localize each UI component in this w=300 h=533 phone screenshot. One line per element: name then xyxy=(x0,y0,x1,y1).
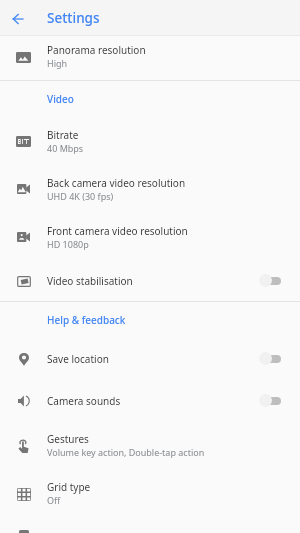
staticText: Camera sounds xyxy=(47,394,121,408)
button[interactable]: Camera sounds xyxy=(247,382,300,424)
button[interactable]: Camera sounds xyxy=(0,382,300,424)
staticText: Help & feedback xyxy=(47,313,126,327)
staticText: Grid type xyxy=(47,480,91,494)
staticText: Settings xyxy=(47,9,100,27)
button[interactable]: Save location xyxy=(247,340,300,382)
staticText: Front camera video resolution xyxy=(47,224,188,238)
staticText: 40 Mbps xyxy=(47,142,84,154)
staticText: Bitrate xyxy=(47,128,79,142)
button[interactable]: Video stabilisation xyxy=(0,261,300,301)
staticText: Panorama resolution xyxy=(47,43,146,57)
staticText: Save location xyxy=(47,352,109,366)
staticText: HD 1080p xyxy=(47,238,89,250)
staticText: Video xyxy=(47,92,74,106)
staticText: Gestures xyxy=(47,432,89,446)
staticText: High xyxy=(47,57,68,69)
staticText: Volume key action, Double-tap action xyxy=(47,446,205,458)
button[interactable] xyxy=(0,520,300,533)
button[interactable]: Back xyxy=(0,1,36,36)
button[interactable]: Back camera video resolution xyxy=(0,165,300,213)
staticText: Off xyxy=(47,494,61,506)
button[interactable]: Bitrate xyxy=(0,117,300,165)
button[interactable]: Gestures xyxy=(0,424,300,472)
staticText: UHD 4K (30 fps) xyxy=(47,190,114,202)
button[interactable]: Grid type xyxy=(0,472,300,520)
staticText: Video stabilisation xyxy=(47,274,133,288)
button[interactable]: Front camera video resolution xyxy=(0,213,300,261)
button[interactable]: Panorama resolution xyxy=(0,36,300,80)
button[interactable]: Save location xyxy=(0,340,300,382)
staticText: Back camera video resolution xyxy=(47,176,186,190)
button[interactable]: Video stabilisation xyxy=(247,261,300,301)
